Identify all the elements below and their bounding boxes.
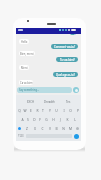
staticText: U	[55, 108, 58, 112]
staticText: D	[33, 117, 36, 121]
button[interactable]: Q	[16, 106, 22, 114]
button[interactable]: B	[53, 124, 60, 132]
button[interactable]: EXCH	[27, 100, 34, 104]
staticText: EXCH	[27, 100, 34, 104]
button[interactable]: Bonjour	[70, 31, 76, 35]
button[interactable]: V	[46, 124, 53, 132]
button[interactable]: U	[53, 106, 60, 114]
staticText: L	[74, 117, 76, 121]
staticText: N	[62, 126, 65, 130]
staticText: K	[66, 117, 69, 121]
staticText: Q	[18, 108, 21, 112]
button[interactable]: P	[74, 106, 81, 114]
button[interactable]: T	[40, 106, 46, 114]
staticText: Bonjour	[70, 31, 76, 35]
button[interactable]: R	[34, 106, 40, 114]
staticText: P	[77, 108, 79, 112]
button[interactable]: G	[43, 115, 50, 123]
button[interactable]: L	[71, 115, 78, 123]
button[interactable]: Comment vas-tu?	[51, 44, 78, 49]
button[interactable]: Y	[46, 106, 53, 114]
button[interactable]: Send	[73, 87, 79, 93]
button[interactable]: Tu vas bien?	[56, 57, 78, 62]
staticText: Tes	[66, 100, 71, 104]
staticText: I	[63, 108, 65, 112]
staticText: F	[39, 117, 41, 121]
staticText: B	[55, 126, 58, 130]
button[interactable]: Ca va bien	[19, 80, 33, 85]
button[interactable]	[16, 28, 81, 34]
button[interactable]: Shift	[16, 124, 23, 132]
staticText: Bien, merci	[20, 52, 34, 56]
button[interactable]: ?123	[18, 134, 24, 138]
button[interactable]: F	[37, 115, 43, 123]
button[interactable]: Backspace	[74, 124, 81, 132]
button[interactable]: S	[25, 115, 31, 123]
button[interactable]: Enter	[74, 134, 79, 139]
staticText: Z	[26, 126, 28, 130]
button[interactable]: Dreadth	[44, 100, 55, 104]
staticText: Comment vas-tu?	[54, 45, 76, 49]
button[interactable]: H	[50, 115, 57, 123]
button[interactable]: M	[67, 124, 74, 132]
staticText: ?123	[18, 134, 24, 138]
button[interactable]: Quel age as-tu?	[53, 72, 78, 77]
staticText: V	[49, 126, 51, 130]
button[interactable]: A	[19, 115, 25, 123]
button[interactable]: Z	[23, 124, 31, 132]
staticText: Tu vas bien?	[60, 58, 75, 62]
button[interactable]: Bien, merci	[19, 51, 35, 56]
button[interactable]: Merci	[19, 65, 29, 70]
button[interactable]: X	[31, 124, 39, 132]
staticText: W	[23, 108, 27, 112]
staticText: R	[36, 108, 39, 112]
staticText: Say something...	[19, 88, 40, 92]
staticText: M	[69, 126, 72, 130]
staticText: E	[30, 108, 32, 112]
button[interactable]: O	[67, 106, 74, 114]
staticText: J	[60, 117, 61, 121]
staticText: A	[21, 117, 24, 121]
staticText: Dreadth	[44, 100, 55, 104]
button[interactable]: D	[31, 115, 37, 123]
staticText: Y	[49, 108, 51, 112]
button[interactable]: Tes	[66, 100, 71, 104]
staticText: Quel age as-tu?	[56, 73, 75, 77]
button[interactable]: E	[28, 106, 34, 114]
staticText: G	[45, 117, 48, 121]
staticText: T	[42, 108, 44, 112]
button[interactable]: W	[22, 106, 28, 114]
staticText: Hello	[21, 40, 28, 44]
button[interactable]: I	[60, 106, 67, 114]
button[interactable]: Hello	[19, 39, 29, 44]
button[interactable]: Say something...	[17, 87, 72, 93]
staticText: Merci	[21, 66, 28, 70]
staticText: X	[34, 126, 36, 130]
staticText: O	[69, 108, 72, 112]
staticText: H	[52, 117, 55, 121]
staticText: S	[27, 117, 29, 121]
button[interactable]: C	[39, 124, 46, 132]
staticText: Ca va bien	[20, 81, 33, 85]
staticText: C	[41, 126, 44, 130]
button[interactable]: J	[57, 115, 64, 123]
button[interactable]: K	[64, 115, 71, 123]
button[interactable]: N	[60, 124, 67, 132]
